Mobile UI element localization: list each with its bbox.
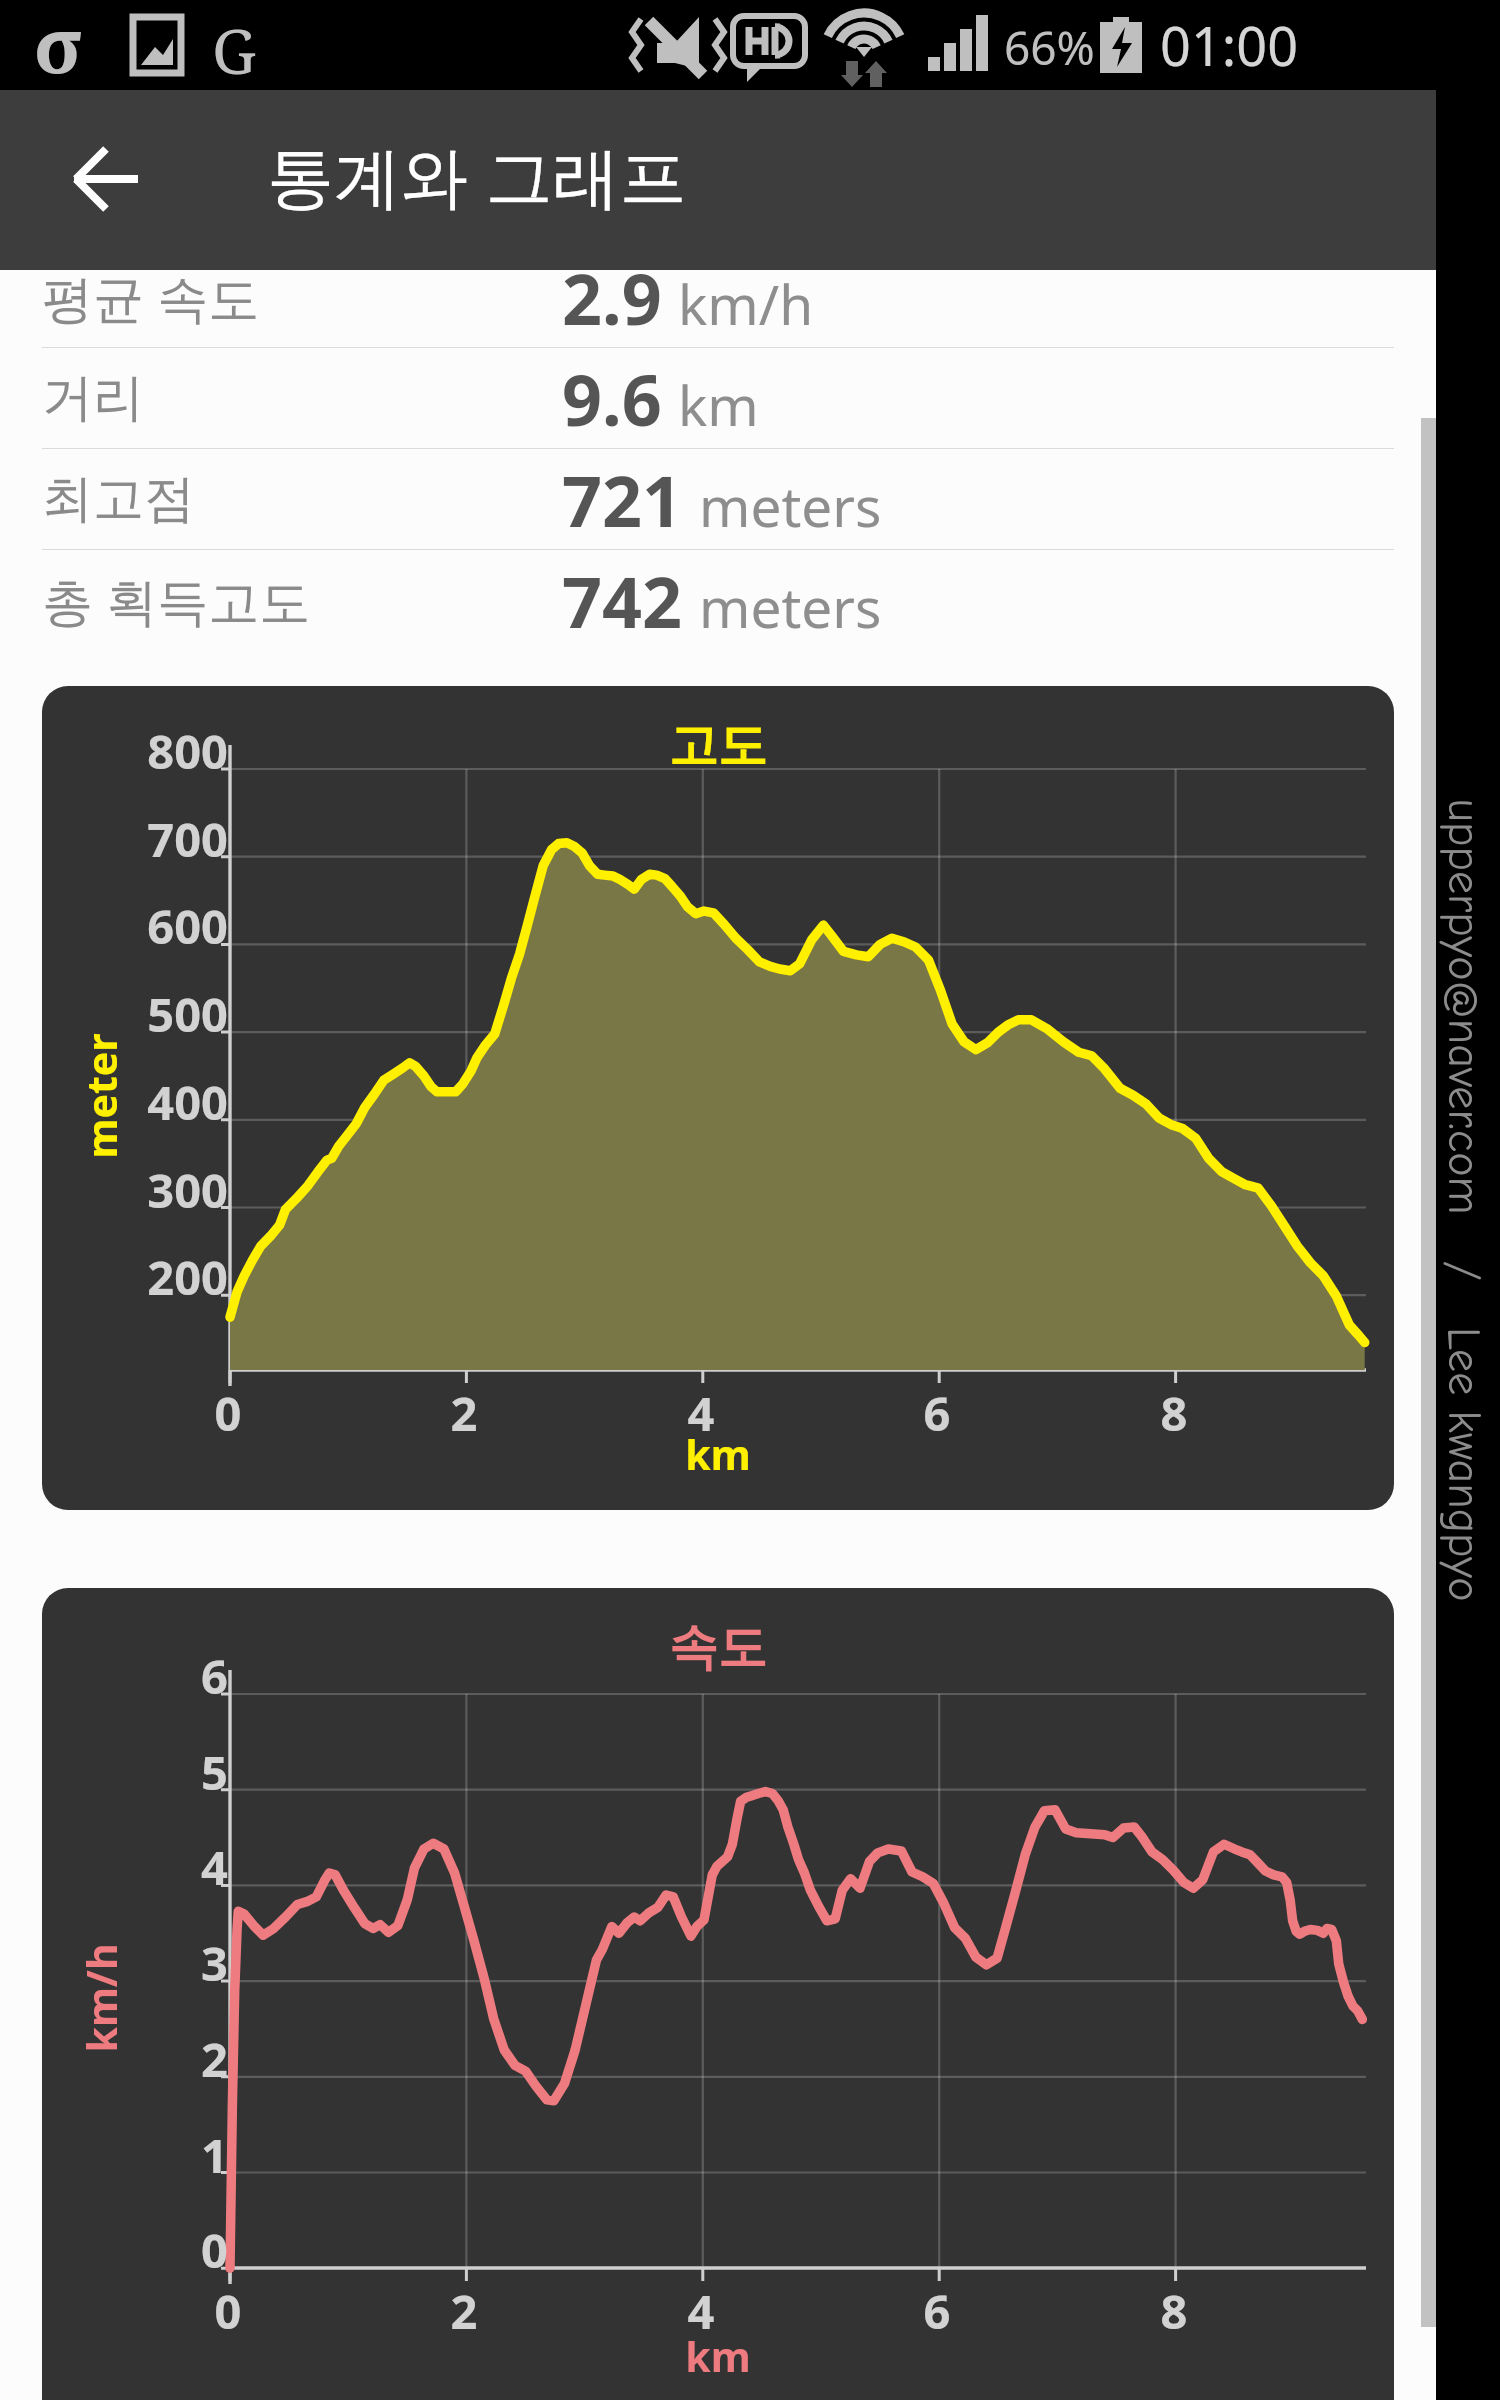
staticText: 0 bbox=[183, 1381, 273, 1445]
staticText: km bbox=[568, 1426, 868, 1482]
staticText: km/h bbox=[678, 266, 814, 341]
staticText: 2 bbox=[42, 2027, 228, 2091]
button[interactable]: Back bbox=[58, 132, 152, 226]
staticText: 6 bbox=[892, 1381, 982, 1445]
staticText: 800 bbox=[42, 719, 228, 783]
staticText: 4 bbox=[656, 2279, 746, 2343]
button[interactable]: 평균 속도 bbox=[0, 247, 1436, 347]
staticText: 6 bbox=[42, 1644, 228, 1708]
staticText: 721 bbox=[562, 452, 683, 547]
staticText: 2 bbox=[419, 1381, 509, 1445]
staticText: 600 bbox=[42, 894, 228, 958]
staticText: 300 bbox=[42, 1158, 228, 1222]
staticText: 통계와 그래프 bbox=[267, 129, 687, 221]
staticText: 4 bbox=[656, 1381, 746, 1445]
staticText: 2 bbox=[419, 2279, 509, 2343]
staticText: meters bbox=[699, 569, 882, 644]
staticText: 3 bbox=[42, 1931, 228, 1995]
button[interactable]: 총 획득고도 bbox=[0, 550, 1436, 650]
staticText: 500 bbox=[42, 982, 228, 1046]
staticText: 속도 bbox=[568, 1617, 868, 1679]
button[interactable]: 최고점 bbox=[0, 449, 1436, 549]
button[interactable]: 거리 bbox=[0, 348, 1436, 448]
staticText: meters bbox=[699, 468, 882, 543]
staticText: km/h bbox=[73, 1943, 129, 2053]
staticText: 200 bbox=[42, 1245, 228, 1309]
staticText: σ bbox=[34, 0, 83, 82]
staticText: 총 획득고도 bbox=[42, 565, 311, 635]
staticText: 5 bbox=[42, 1740, 228, 1804]
staticText: km bbox=[678, 367, 759, 442]
staticText: 평균 속도 bbox=[42, 262, 260, 332]
staticText: 고도 bbox=[568, 715, 868, 777]
staticText: 6 bbox=[892, 2279, 982, 2343]
staticText: meter bbox=[73, 1033, 129, 1159]
staticText: 9.6 bbox=[562, 351, 662, 446]
staticText: 700 bbox=[42, 807, 228, 871]
staticText: 400 bbox=[42, 1070, 228, 1134]
button[interactable]: 고도 chart bbox=[42, 686, 1394, 1510]
staticText: upperpyo@naver.com / Lee kwangpyo bbox=[1437, 470, 1490, 1930]
staticText: 01:00 bbox=[1160, 8, 1299, 82]
staticText: G bbox=[212, 8, 257, 92]
staticText: 1 bbox=[42, 2123, 228, 2187]
staticText: 8 bbox=[1129, 2279, 1219, 2343]
staticText: 8 bbox=[1129, 1381, 1219, 1445]
staticText: 66% bbox=[1004, 16, 1095, 79]
staticText: 4 bbox=[42, 1835, 228, 1899]
button[interactable]: 속도 chart bbox=[42, 1588, 1394, 2400]
staticText: 742 bbox=[562, 553, 683, 648]
staticText: 거리 bbox=[42, 366, 144, 430]
staticText: 2.9 bbox=[562, 250, 662, 345]
staticText: 최고점 bbox=[42, 467, 195, 531]
staticText: 0 bbox=[42, 2218, 228, 2282]
staticText: 0 bbox=[183, 2279, 273, 2343]
staticText: km bbox=[568, 2328, 868, 2384]
